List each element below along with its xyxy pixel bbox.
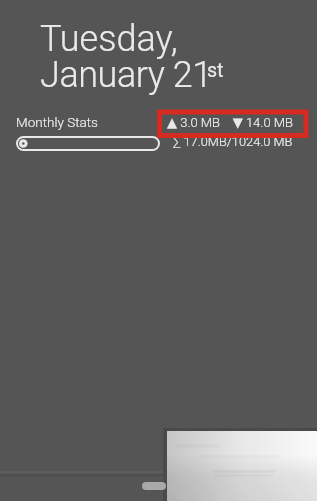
staticText: Monthly Stats (16, 114, 98, 130)
staticText: Tuesday, (40, 18, 178, 60)
staticText: ▲ 3.0 MB ▼ 14.0 MB (167, 115, 294, 130)
button[interactable]: Monthly data usage (16, 136, 160, 151)
staticText: January 21 (40, 54, 212, 96)
staticText: ∑ 17.0MB/1024.0 MB (173, 134, 293, 149)
staticText: st (207, 59, 224, 82)
